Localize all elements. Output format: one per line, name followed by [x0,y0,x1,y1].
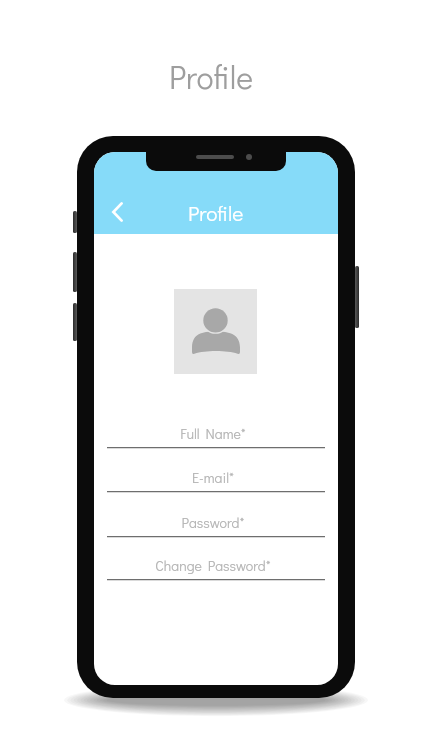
staticText: E-mail* [104,468,322,486]
staticText: Profile [0,56,422,98]
button[interactable]: Password* [107,513,325,538]
button[interactable]: Profile picture [174,289,257,374]
button[interactable]: E-mail* [107,468,325,493]
staticText: Profile [188,199,244,227]
staticText: Change Password* [104,556,322,574]
button[interactable]: Full Name* [107,424,325,449]
staticText: Password* [104,513,322,531]
button[interactable]: Back [99,193,136,230]
staticText: Full Name* [104,424,322,442]
button[interactable]: Change Password* [107,556,325,581]
